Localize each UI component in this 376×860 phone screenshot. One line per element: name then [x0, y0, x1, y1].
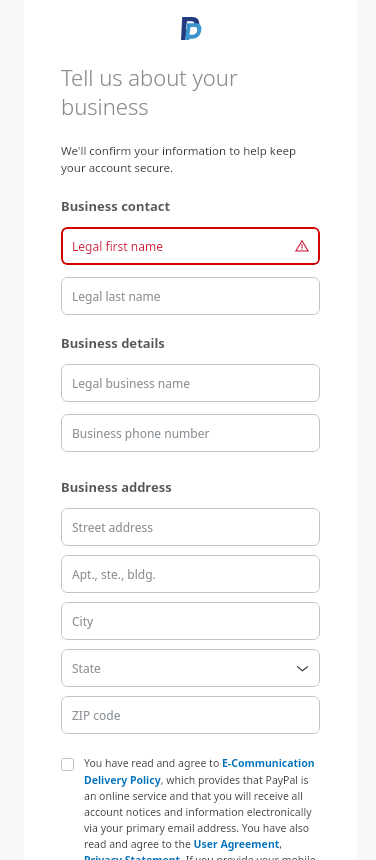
other: Open state list: [296, 662, 309, 675]
button[interactable]: Legal business name: [61, 364, 320, 402]
staticText: ZIP code: [72, 707, 121, 723]
staticText: Business contact: [61, 197, 171, 215]
button[interactable]: State: [61, 649, 320, 687]
staticText: Street address: [72, 519, 154, 535]
staticText: City: [72, 613, 94, 629]
staticText: Legal business name: [72, 375, 190, 391]
staticText: Apt., ste., bldg.: [72, 566, 156, 582]
staticText: You have read and agree to E-Communicati…: [84, 756, 320, 860]
staticText: Business phone number: [72, 425, 210, 441]
other: Error: [295, 239, 309, 253]
button[interactable]: Agree checkbox: [61, 756, 320, 860]
staticText: Business address: [61, 478, 172, 496]
button[interactable]: ZIP code: [61, 696, 320, 734]
staticText: Business details: [61, 334, 165, 352]
staticText: Legal first name: [72, 238, 163, 254]
staticText: Tell us about your business: [61, 62, 238, 121]
button[interactable]: City: [61, 602, 320, 640]
button[interactable]: Legal first name: [61, 227, 320, 265]
other: PayPal: [181, 16, 201, 40]
button[interactable]: Legal last name: [61, 277, 320, 315]
button[interactable]: Apt., ste., bldg.: [61, 555, 320, 593]
staticText: Legal last name: [72, 288, 161, 304]
other: Agree checkbox: [61, 758, 74, 771]
button[interactable]: Business phone number: [61, 414, 320, 452]
button[interactable]: Street address: [61, 508, 320, 546]
staticText: We'll confirm your information to help k…: [61, 143, 320, 176]
staticText: State: [72, 660, 101, 676]
